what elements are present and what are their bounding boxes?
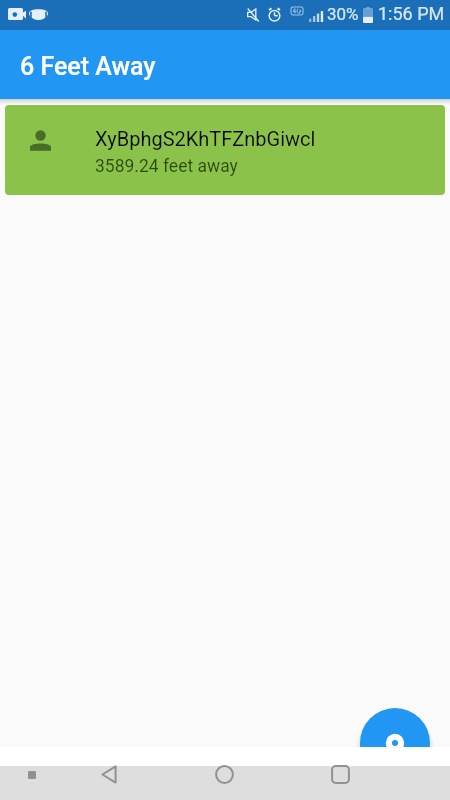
staticText: 1:56 PM bbox=[378, 3, 445, 24]
button[interactable]: Menu bbox=[8, 747, 56, 800]
staticText: 6 Feet Away bbox=[20, 52, 156, 81]
button[interactable]: Home bbox=[200, 747, 248, 800]
button[interactable]: Back bbox=[85, 747, 133, 800]
staticText: 3589.24 feet away bbox=[95, 156, 238, 177]
button[interactable]: XyBphgS2KhTFZnbGiwcl bbox=[5, 105, 445, 195]
button[interactable]: Recents bbox=[316, 747, 364, 800]
button[interactable]: My location bbox=[360, 708, 430, 747]
staticText: 30% bbox=[327, 4, 359, 24]
staticText: XyBphgS2KhTFZnbGiwcl bbox=[95, 127, 316, 150]
